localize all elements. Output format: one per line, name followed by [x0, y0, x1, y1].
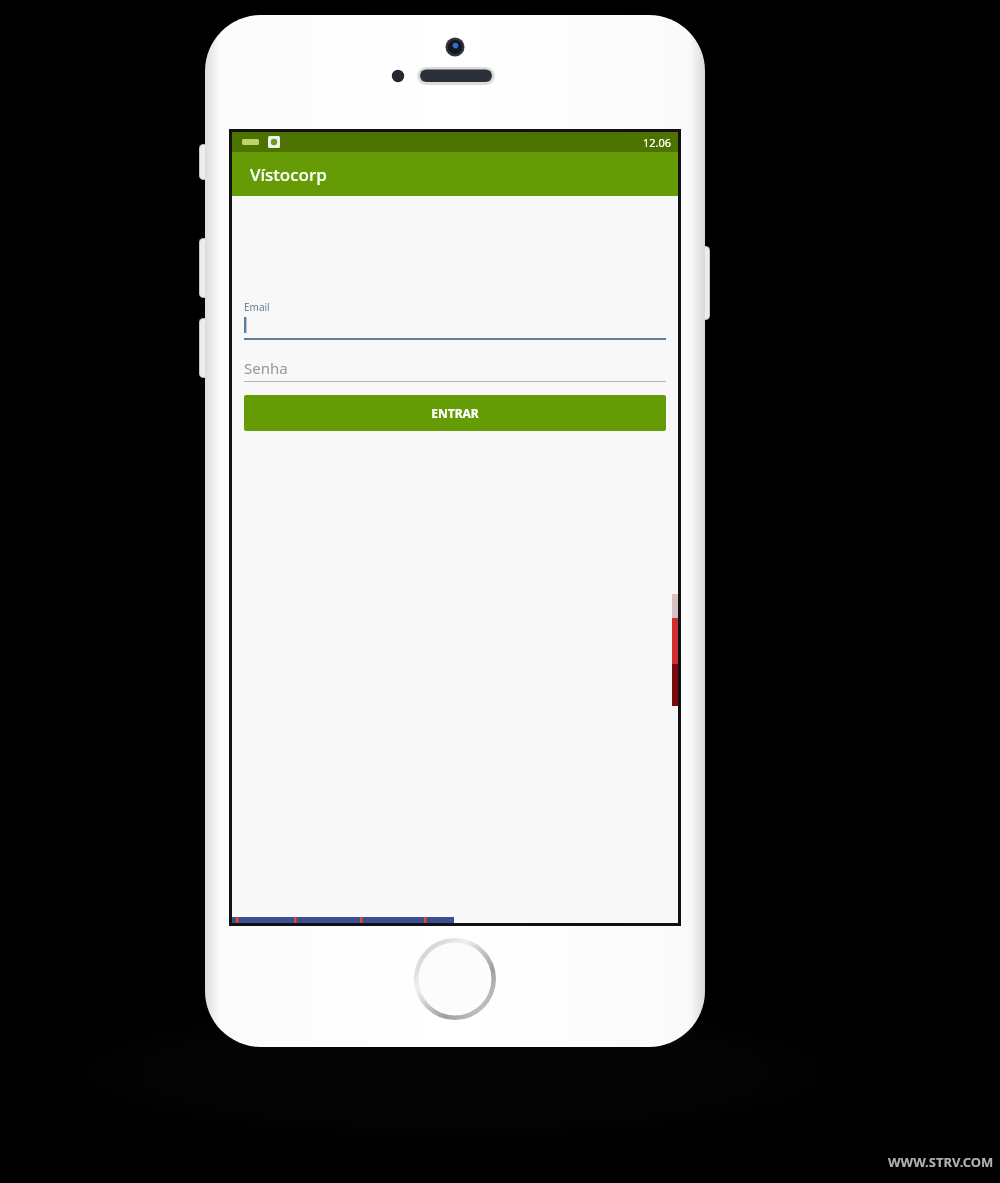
staticText: WWW.STRV.COM — [888, 1153, 994, 1171]
staticText: Vístocorp — [250, 163, 327, 186]
staticText: ENTRAR — [431, 405, 479, 421]
button[interactable]: ENTRAR — [244, 395, 666, 431]
button[interactable]: Email — [244, 300, 666, 340]
staticText: 12.06 — [643, 135, 672, 150]
staticText: Senha — [244, 358, 288, 378]
staticText: Email — [244, 300, 270, 314]
button[interactable]: Senha — [244, 355, 666, 382]
